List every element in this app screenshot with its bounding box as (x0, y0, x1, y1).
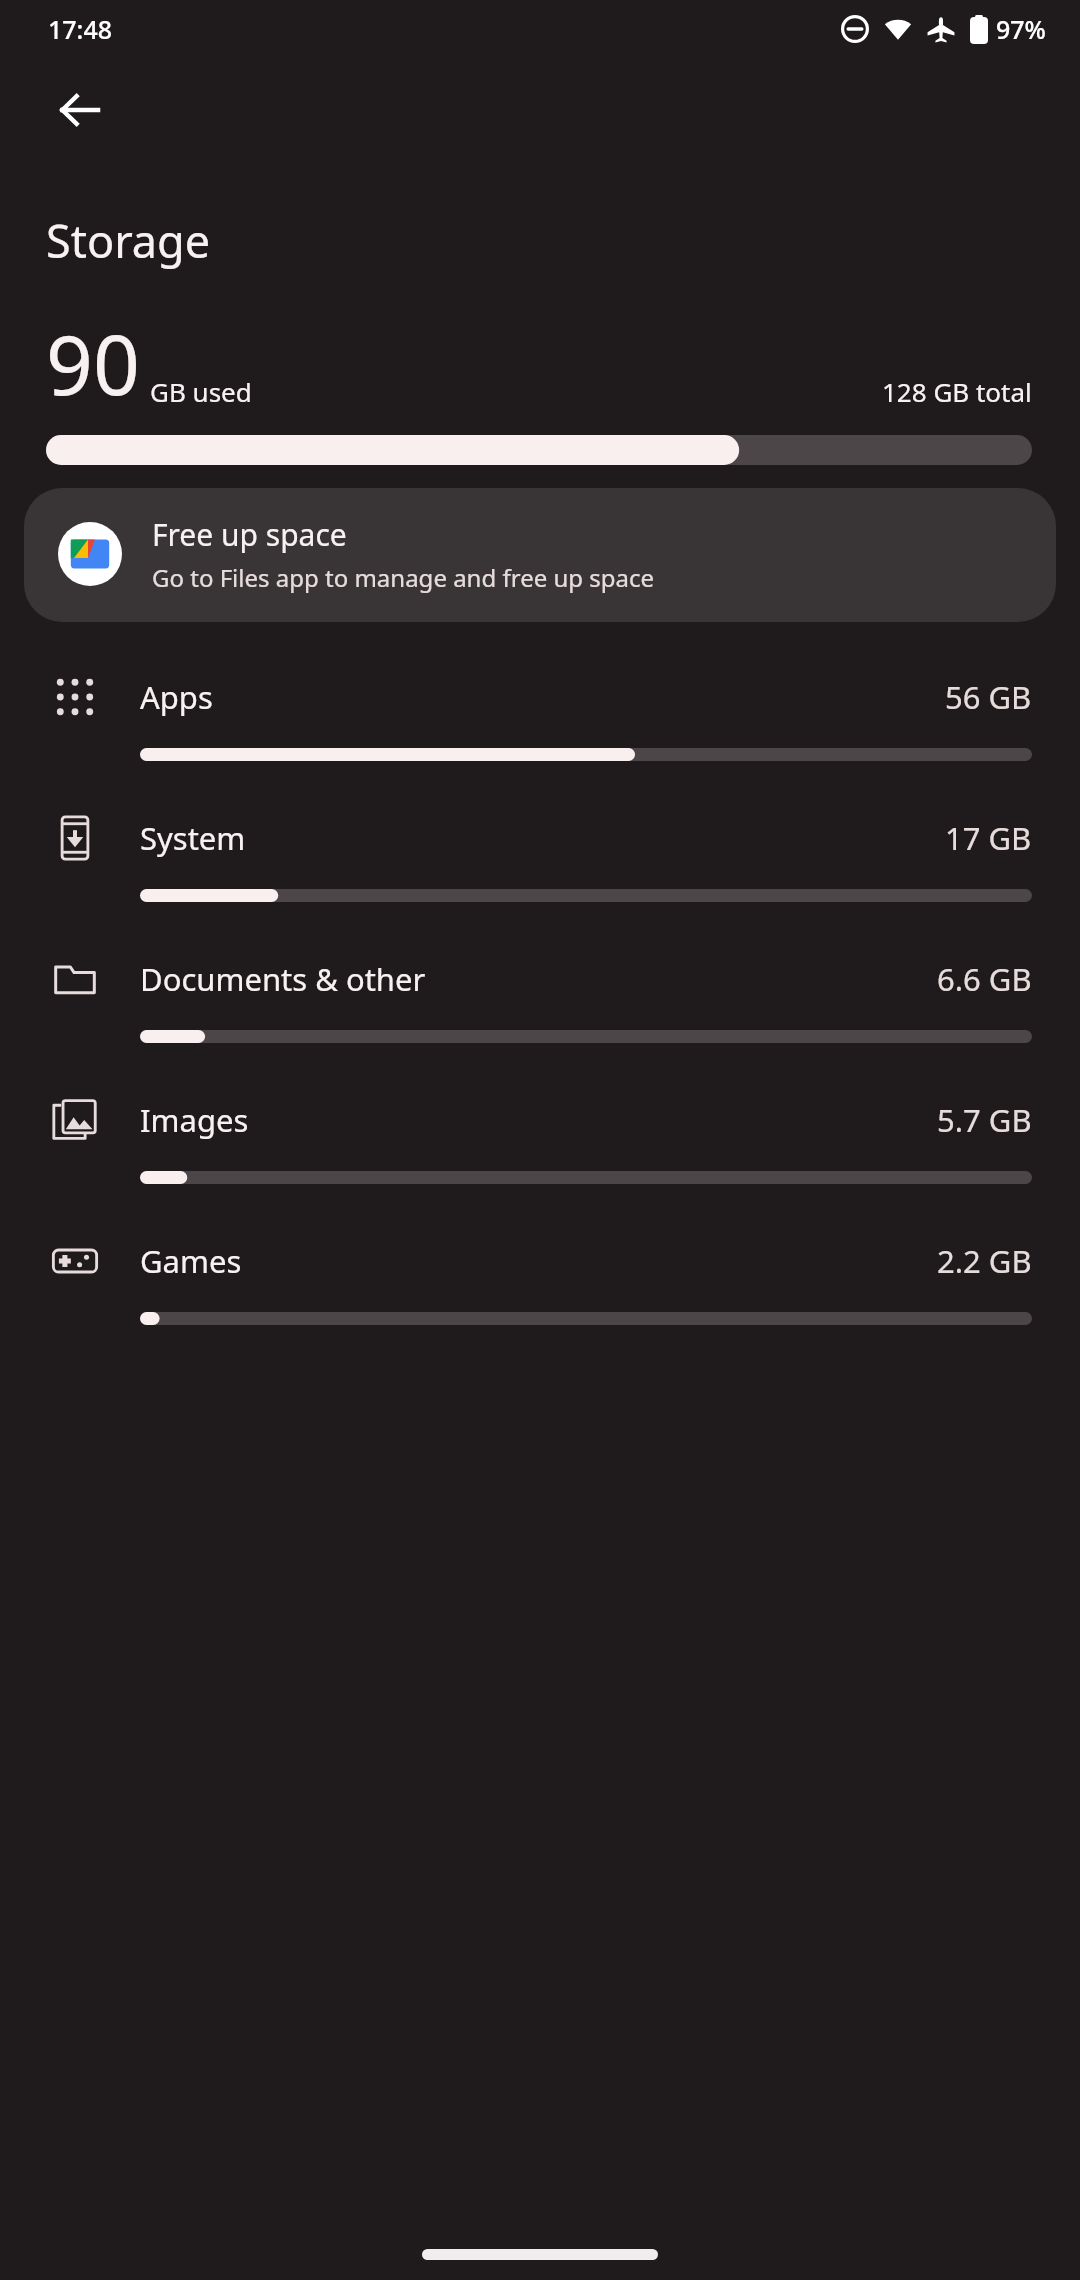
staticText: 128 GB total (882, 374, 1032, 409)
staticText: 90 (46, 307, 140, 419)
staticText: Images (140, 1099, 249, 1141)
button[interactable]: Free up space (24, 488, 1056, 622)
staticText: Free up space (152, 514, 347, 555)
button[interactable]: Games (0, 1208, 1080, 1349)
staticText: System (140, 817, 246, 859)
staticText: 5.7 GB (937, 1099, 1032, 1141)
button[interactable]: Back (46, 76, 114, 144)
staticText: Documents & other (140, 958, 426, 1000)
button[interactable]: Images (0, 1067, 1080, 1208)
staticText: 56 GB (945, 676, 1032, 718)
button[interactable]: Apps (0, 644, 1080, 785)
staticText: Go to Files app to manage and free up sp… (152, 561, 655, 594)
staticText: 17 GB (945, 817, 1032, 859)
staticText: 17:48 (48, 12, 113, 46)
staticText: 6.6 GB (937, 958, 1032, 1000)
button[interactable]: System (0, 785, 1080, 926)
staticText: 97% (996, 12, 1046, 46)
staticText: Storage (46, 210, 211, 271)
staticText: Apps (140, 676, 213, 718)
staticText: GB used (150, 374, 252, 409)
staticText: Games (140, 1240, 242, 1282)
button[interactable]: Documents & other (0, 926, 1080, 1067)
staticText: 2.2 GB (937, 1240, 1032, 1282)
